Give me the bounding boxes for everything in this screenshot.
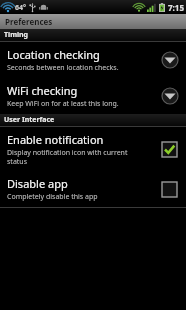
staticText: 7:15 [168, 2, 184, 13]
staticText: Seconds between location checks. [7, 63, 119, 73]
button[interactable]: Location checking [0, 42, 186, 78]
button[interactable]: Enable notification [0, 127, 186, 171]
other: Open list [161, 51, 179, 69]
staticText: Completely disable this app [7, 192, 98, 202]
other: Unchecked checkbox [162, 182, 177, 197]
staticText: Display notification icon with current s… [7, 148, 128, 166]
staticText: Keep WiFi on for at least this long. [7, 99, 119, 109]
staticText: User Interface [4, 115, 55, 125]
other: Checked checkbox [162, 142, 177, 157]
button[interactable]: WiFi checking [0, 78, 186, 114]
staticText: Disable app [7, 176, 68, 191]
staticText: Preferences [5, 16, 53, 27]
button[interactable]: Disable app [0, 171, 186, 207]
staticText: WiFi checking [7, 83, 78, 98]
staticText: 64° [15, 3, 26, 13]
staticText: Timing [4, 30, 29, 40]
staticText: Location checking [7, 47, 100, 62]
other: Open list [161, 87, 179, 105]
staticText: Enable notification [7, 132, 104, 147]
